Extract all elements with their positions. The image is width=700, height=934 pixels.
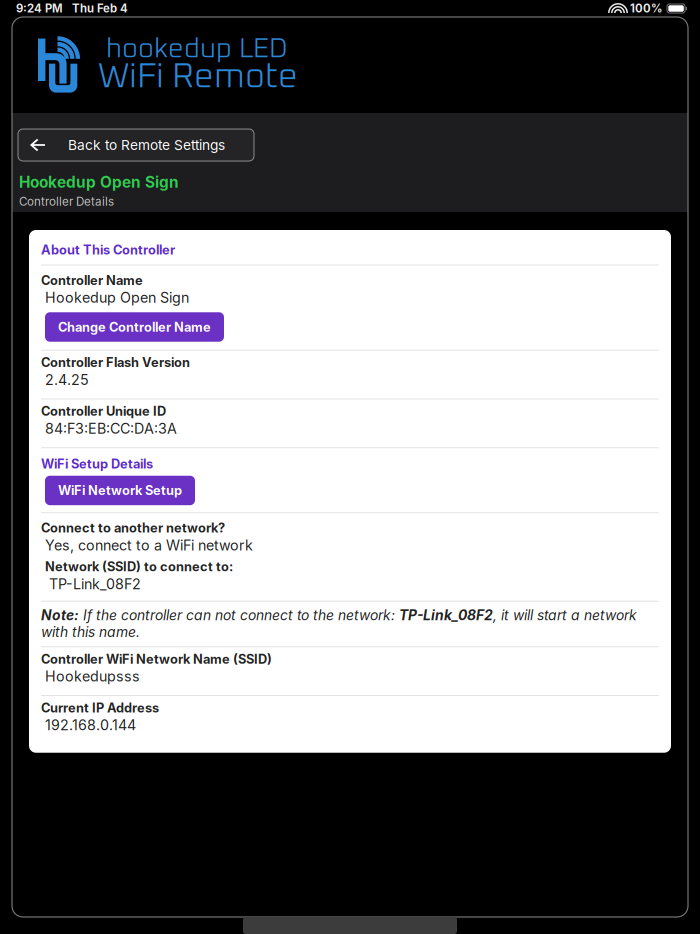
button[interactable]: WiFi Network Setup <box>45 476 195 505</box>
staticText: 192.168.0.144 <box>45 716 136 734</box>
staticText: Hookedup Open Sign <box>19 173 179 192</box>
staticText: Network (SSID) to connect to: <box>45 559 233 574</box>
staticText: Note: <box>41 607 79 623</box>
staticText: Change Controller Name <box>58 319 211 335</box>
staticText: Thu Feb 4 <box>72 2 128 15</box>
staticText: 84:F3:EB:CC:DA:3A <box>45 420 177 437</box>
staticText: About This Controller <box>41 242 175 257</box>
staticText: WiFi Setup Details <box>41 456 153 472</box>
staticText: Hookedup Open Sign <box>45 289 189 306</box>
staticText: 100% <box>630 2 663 15</box>
staticText: Current IP Address <box>41 700 159 715</box>
staticText: Connect to another network? <box>41 520 225 536</box>
staticText: hookedup LED <box>106 36 288 63</box>
staticText: Back to Remote Settings <box>68 137 225 153</box>
staticText: TP-Link_08F2 <box>49 575 141 593</box>
staticText: Controller Details <box>19 195 114 209</box>
staticText: WiFi Remote <box>98 60 298 94</box>
staticText: with this name. <box>41 623 140 640</box>
staticText: 2.4.25 <box>45 371 89 388</box>
staticText: Hookedupsss <box>45 668 140 685</box>
staticText: , it will start a network <box>493 607 637 623</box>
staticText: Controller Unique ID <box>41 403 166 419</box>
staticText: Controller Name <box>41 272 143 288</box>
staticText: Controller Flash Version <box>41 355 190 370</box>
button[interactable]: Back to Remote Settings <box>18 129 254 161</box>
staticText: Yes, connect to a WiFi network <box>45 537 253 554</box>
staticText: Controller WiFi Network Name (SSID) <box>41 651 272 667</box>
button[interactable]: Change Controller Name <box>45 312 224 342</box>
staticText: If the controller can not connect to the… <box>79 607 399 623</box>
staticText: WiFi Network Setup <box>58 483 182 498</box>
staticText: TP-Link_08F2 <box>399 607 493 623</box>
staticText: 9:24 PM <box>16 2 63 15</box>
